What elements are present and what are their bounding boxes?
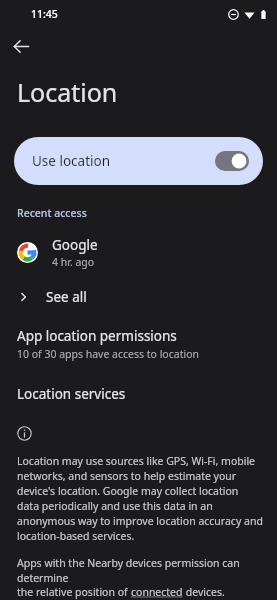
staticText: Apps with the Nearby devices permission …: [17, 556, 267, 585]
staticText: Google: [52, 236, 98, 254]
staticText: See all: [46, 288, 87, 306]
staticText: App location permissions: [17, 327, 177, 345]
staticText: Location services: [17, 385, 126, 403]
staticText: Location may use sources like GPS, Wi-Fi…: [17, 454, 263, 543]
button[interactable]: App location permissions: [0, 325, 277, 363]
staticText: devices.: [183, 585, 225, 599]
button[interactable]: Back: [6, 31, 36, 61]
staticText: 4 hr. ago: [52, 255, 95, 269]
button[interactable]: connected: [131, 585, 183, 599]
staticText: the relative position of: [17, 585, 131, 599]
button[interactable]: Use location: [14, 137, 263, 185]
button[interactable]: Google: [0, 234, 277, 271]
button[interactable]: See all: [0, 281, 277, 313]
staticText: Use location: [32, 152, 111, 170]
staticText: Location: [17, 75, 118, 109]
staticText: 10 of 30 apps have access to location: [17, 347, 199, 361]
staticText: Recent access: [17, 206, 87, 220]
staticText: 11:45: [31, 7, 58, 21]
